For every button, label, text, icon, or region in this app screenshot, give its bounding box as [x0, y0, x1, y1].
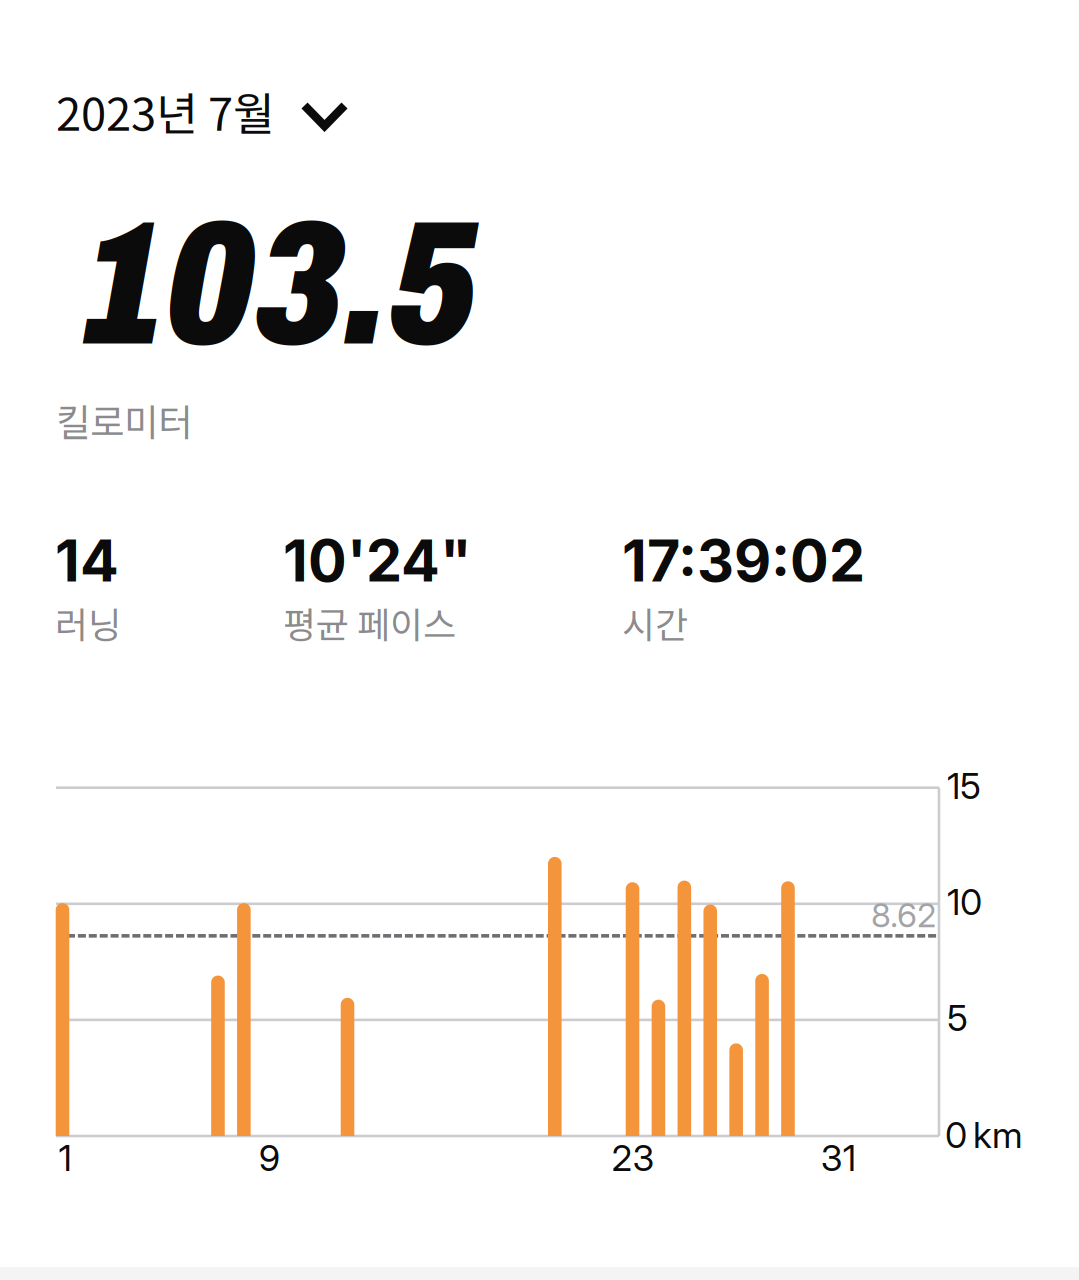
staticText: 8.62 [871, 895, 936, 935]
staticText: 시간 [622, 596, 688, 648]
staticText: 0 km [945, 1113, 1023, 1157]
staticText: 17:39:02 [622, 526, 865, 595]
staticText: 2023년 7월 [56, 78, 275, 144]
staticText: 15 [947, 764, 981, 808]
staticText: 31 [821, 1136, 856, 1180]
staticText: 23 [611, 1136, 654, 1180]
staticText: 킬로미터 [56, 393, 192, 447]
staticText: 5 [947, 996, 968, 1040]
button[interactable]: 17:39:02 [622, 526, 961, 648]
staticText: 9 [259, 1136, 280, 1180]
staticText: 10 [947, 880, 982, 924]
button[interactable]: 10'24" [283, 526, 622, 648]
staticText: 1 [58, 1136, 71, 1180]
staticText: 103.5 [85, 189, 478, 380]
staticText: 평균 페이스 [283, 596, 456, 648]
button[interactable]: 2023년 7월, 기간 선택 [40, 66, 365, 156]
staticText: 러닝 [55, 596, 121, 648]
button[interactable]: 14 [55, 526, 283, 648]
staticText: 14 [55, 526, 119, 595]
staticText: 10'24" [283, 526, 472, 595]
